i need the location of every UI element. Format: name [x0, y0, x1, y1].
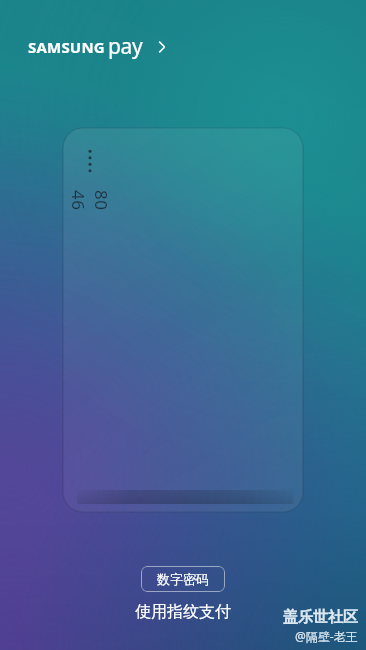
staticText: 使用指纹支付: [135, 602, 231, 622]
button[interactable]: SAMSUNG: [26, 28, 171, 65]
staticText: pay: [108, 32, 143, 61]
button[interactable]: Payment card 8046: [63, 128, 303, 512]
button[interactable]: 数字密码: [141, 566, 225, 592]
staticText: SAMSUNG: [28, 37, 105, 57]
staticText: 盖乐世社区: [283, 608, 358, 627]
staticText: 8046: [67, 190, 113, 212]
other: More cards: [155, 38, 169, 56]
staticText: 数字密码: [157, 571, 209, 587]
staticText: @隔壁-老王: [295, 628, 358, 644]
